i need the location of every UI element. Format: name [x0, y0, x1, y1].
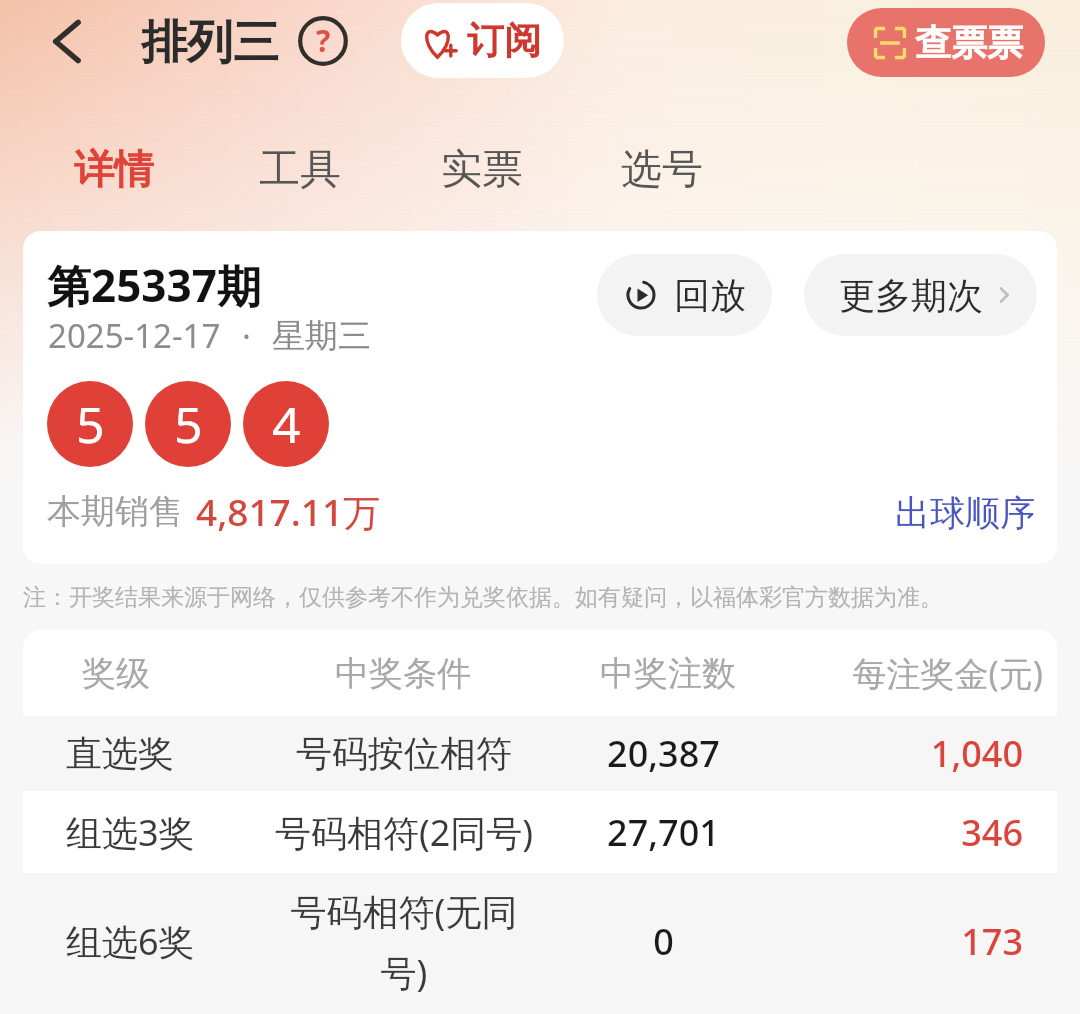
button[interactable]: 详情 [52, 132, 176, 206]
button[interactable]: 回放 [597, 254, 772, 336]
button[interactable]: 出球顺序 [885, 483, 1045, 543]
staticText: 订阅 [467, 17, 541, 64]
staticText: 27,701 [607, 808, 720, 857]
staticText: 注：开奖结果来源于网络，仅供参考不作为兑奖依据。如有疑问，以福体彩官方数据为准。 [23, 583, 943, 612]
staticText: ? [316, 20, 331, 61]
staticText: 1,040 [930, 729, 1023, 778]
staticText: 号码相符(无同号) [269, 887, 539, 996]
staticText: 详情 [74, 144, 154, 194]
staticText: 346 [961, 808, 1023, 857]
staticText: 2025-12-17 [48, 313, 221, 358]
staticText: 回放 [674, 273, 746, 318]
staticText: 每注奖金(元) [852, 650, 1043, 696]
staticText: · [242, 313, 251, 358]
staticText: 号码按位相符 [269, 731, 539, 776]
staticText: 中奖条件 [268, 652, 538, 695]
button[interactable]: Help [297, 15, 349, 67]
staticText: 4,817.11万 [196, 486, 381, 537]
staticText: 本期销售 [47, 490, 183, 533]
staticText: 组选3奖 [66, 808, 195, 857]
button[interactable]: 选号 [599, 132, 725, 208]
button[interactable]: 订阅 [401, 3, 564, 78]
staticText: 工具 [259, 144, 341, 196]
staticText: 更多期次 [839, 273, 983, 318]
staticText: 星期三 [272, 315, 371, 357]
button[interactable]: Back [36, 11, 96, 71]
button[interactable]: 工具 [237, 132, 363, 208]
staticText: 5 [76, 390, 105, 458]
staticText: 第25337期 [47, 255, 261, 315]
staticText: 173 [961, 917, 1023, 966]
staticText: 4 [272, 390, 301, 458]
button[interactable]: 实票 [419, 132, 545, 208]
staticText: 直选奖 [66, 731, 174, 776]
staticText: 出球顺序 [895, 491, 1035, 535]
staticText: 选号 [621, 144, 703, 196]
staticText: 排列三 [141, 14, 279, 72]
staticText: 中奖注数 [600, 652, 736, 695]
staticText: 查票票 [915, 20, 1023, 65]
staticText: 20,387 [607, 729, 720, 778]
staticText: 0 [653, 917, 674, 966]
staticText: 实票 [441, 144, 523, 196]
button[interactable]: 更多期次 [804, 254, 1037, 336]
staticText: 奖级 [82, 652, 150, 695]
button[interactable]: 查票票 [847, 8, 1045, 77]
staticText: 号码相符(2同号) [269, 808, 539, 857]
staticText: 5 [174, 390, 203, 458]
staticText: 组选6奖 [66, 917, 195, 966]
